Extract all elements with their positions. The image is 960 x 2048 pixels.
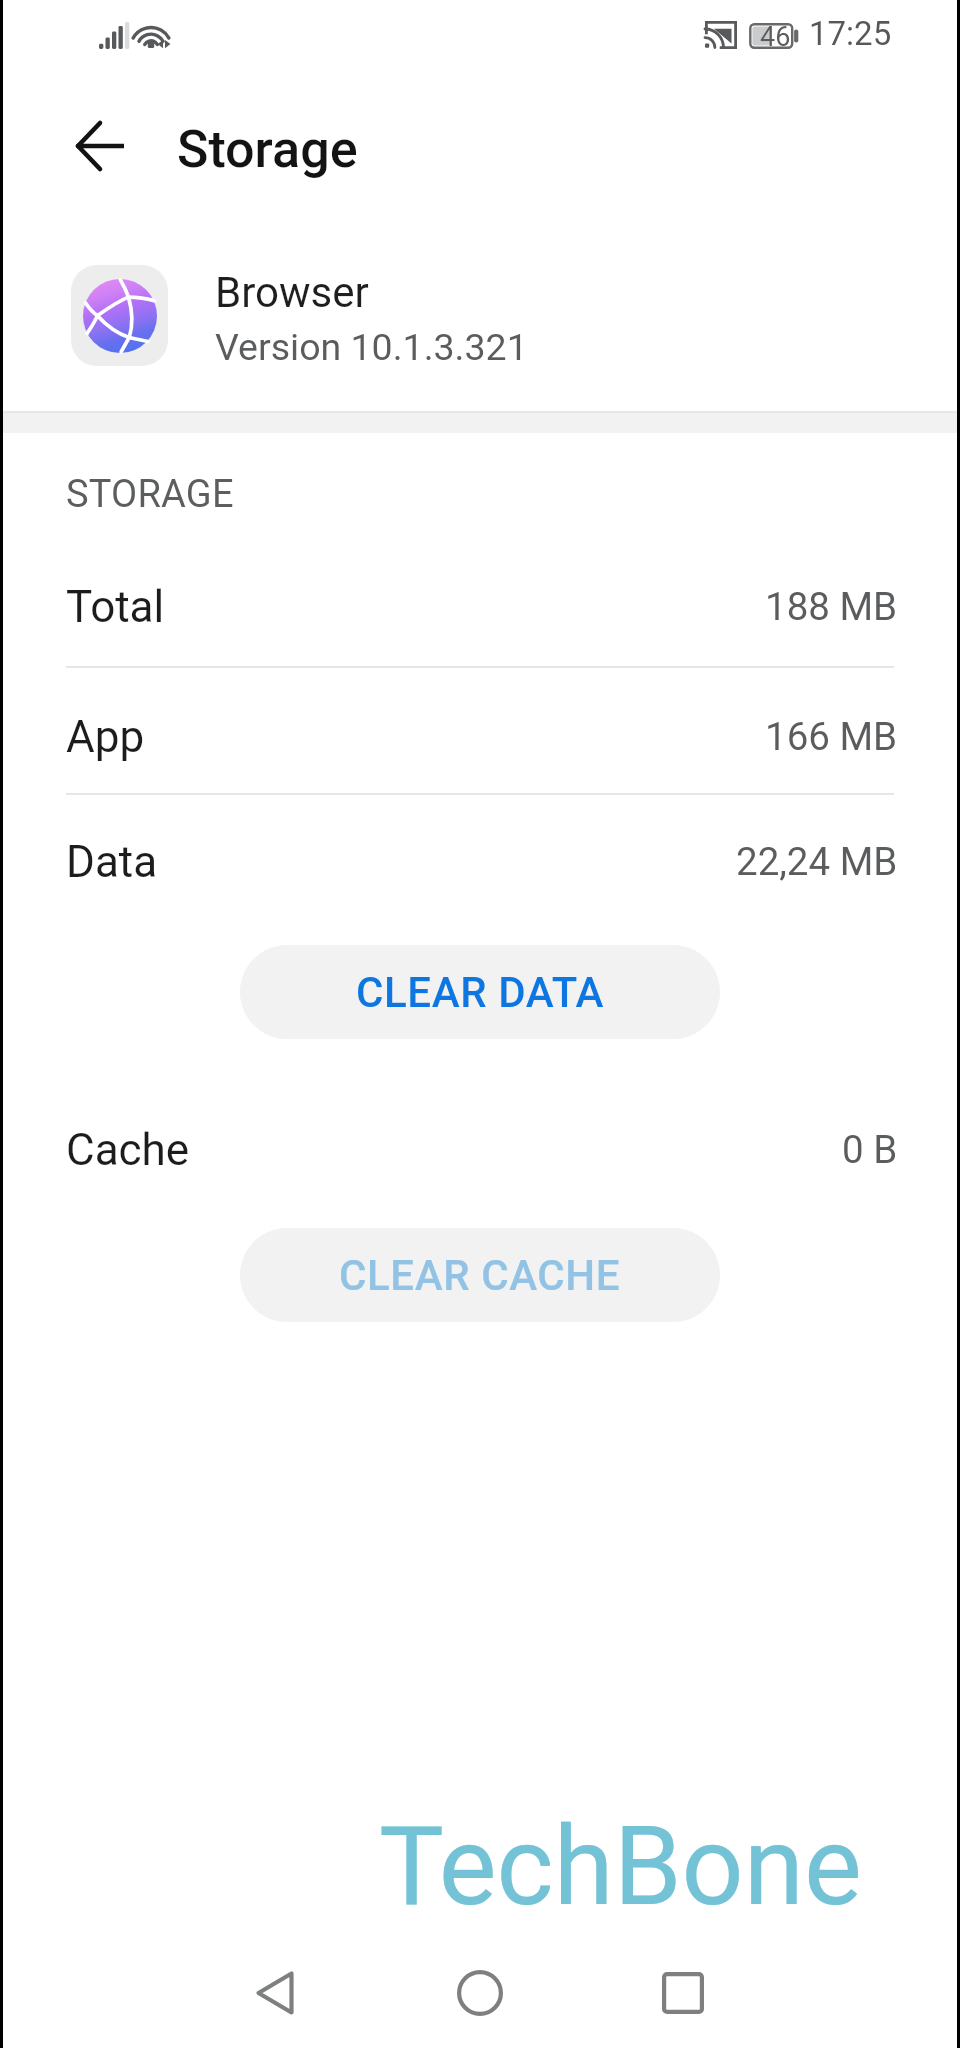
staticText: STORAGE [66, 472, 234, 517]
button[interactable]: CLEAR DATA [240, 945, 720, 1039]
staticText: Cache [66, 1124, 190, 1174]
staticText: Data [66, 836, 158, 886]
button[interactable]: Home [435, 1948, 525, 2038]
staticText: TechBone [379, 1803, 862, 1931]
button[interactable]: Cache [3, 1085, 957, 1212]
staticText: 0 B [842, 1127, 898, 1172]
staticText: 188 MB [765, 584, 898, 629]
button[interactable]: App [3, 672, 957, 799]
staticText: Version 10.1.3.321 [215, 325, 528, 369]
staticText: CLEAR CACHE [339, 1251, 621, 1300]
button[interactable]: Back [52, 98, 147, 193]
button[interactable]: Back [230, 1948, 320, 2038]
staticText: Storage [177, 119, 358, 180]
staticText: App [66, 711, 145, 761]
staticText: Browser [215, 268, 369, 317]
staticText: Total [66, 581, 165, 631]
button[interactable]: Recent apps [638, 1948, 728, 2038]
staticText: 46 [760, 21, 791, 47]
staticText: CLEAR DATA [356, 968, 605, 1017]
button[interactable]: Data [3, 797, 957, 924]
staticText: 166 MB [765, 714, 898, 759]
button[interactable]: Total [3, 542, 957, 669]
staticText: 22,24 MB [736, 839, 898, 884]
button[interactable]: CLEAR CACHE [240, 1228, 720, 1322]
staticText: 17:25 [809, 14, 892, 53]
